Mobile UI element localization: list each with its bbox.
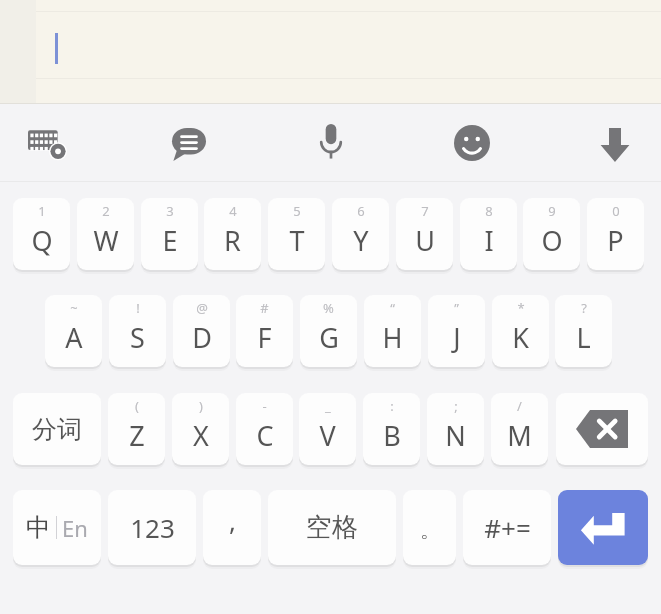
staticText: D bbox=[192, 319, 212, 356]
staticText: I bbox=[484, 222, 494, 259]
staticText: O bbox=[541, 222, 563, 259]
staticText: En bbox=[62, 513, 88, 543]
staticText: P bbox=[607, 222, 624, 259]
staticText: 123 bbox=[130, 510, 175, 545]
staticText: 9 bbox=[548, 202, 556, 220]
button[interactable]: * bbox=[492, 295, 549, 367]
button[interactable]: 。 bbox=[403, 490, 456, 565]
staticText: / bbox=[517, 397, 522, 415]
button[interactable]: - bbox=[236, 393, 293, 465]
staticText: M bbox=[507, 417, 532, 454]
staticText: 6 bbox=[357, 202, 365, 220]
button[interactable]: 8 bbox=[460, 198, 517, 270]
button[interactable]: ) bbox=[172, 393, 229, 465]
staticText: U bbox=[415, 222, 435, 259]
staticText: ; bbox=[454, 397, 458, 415]
staticText: 空格 bbox=[306, 511, 358, 544]
staticText: C bbox=[256, 417, 274, 454]
button[interactable]: Keyboard settings bbox=[18, 117, 76, 169]
staticText: W bbox=[93, 222, 119, 259]
button[interactable]: ~ bbox=[45, 295, 102, 367]
button[interactable]: Voice input bbox=[302, 116, 360, 168]
staticText: L bbox=[576, 319, 591, 356]
staticText: , bbox=[229, 503, 236, 538]
button[interactable]: Backspace bbox=[556, 393, 648, 465]
button[interactable]: % bbox=[300, 295, 357, 367]
button[interactable]: # bbox=[236, 295, 293, 367]
button[interactable]: Hide keyboard bbox=[586, 119, 644, 171]
staticText: S bbox=[130, 319, 145, 356]
staticText: Z bbox=[129, 417, 145, 454]
button[interactable]: “ bbox=[364, 295, 421, 367]
button[interactable]: 4 bbox=[204, 198, 261, 270]
staticText: # bbox=[260, 299, 269, 317]
staticText: 0 bbox=[612, 202, 620, 220]
staticText: @ bbox=[196, 299, 208, 317]
button[interactable]: 9 bbox=[523, 198, 580, 270]
staticText: : bbox=[390, 397, 394, 415]
staticText: “ bbox=[390, 299, 395, 317]
staticText: 1 bbox=[38, 202, 46, 220]
staticText: E bbox=[162, 222, 178, 259]
staticText: 7 bbox=[421, 202, 429, 220]
staticText: ! bbox=[136, 299, 140, 317]
staticText: ~ bbox=[70, 299, 78, 317]
staticText: J bbox=[453, 319, 461, 356]
button[interactable]: 空格 bbox=[268, 490, 396, 565]
staticText: B bbox=[383, 417, 401, 454]
button[interactable]: 2 bbox=[77, 198, 134, 270]
staticText: 8 bbox=[485, 202, 493, 220]
button[interactable]: : bbox=[363, 393, 420, 465]
staticText: % bbox=[323, 299, 334, 317]
button[interactable]: 3 bbox=[141, 198, 198, 270]
staticText: Y bbox=[353, 222, 369, 259]
button[interactable]: _ bbox=[299, 393, 356, 465]
button[interactable]: 分词 bbox=[13, 393, 101, 465]
button[interactable]: Emoji bbox=[443, 117, 501, 169]
staticText: N bbox=[445, 417, 466, 454]
button[interactable]: ! bbox=[109, 295, 166, 367]
staticText: 2 bbox=[102, 202, 110, 220]
button[interactable]: ( bbox=[108, 393, 165, 465]
staticText: G bbox=[319, 319, 339, 356]
staticText: 中 bbox=[26, 512, 51, 543]
button[interactable]: ” bbox=[428, 295, 485, 367]
staticText: _ bbox=[325, 397, 331, 415]
staticText: R bbox=[224, 222, 241, 259]
button[interactable]: Switch input language bbox=[13, 490, 101, 565]
button[interactable]: 6 bbox=[332, 198, 389, 270]
button[interactable]: 0 bbox=[587, 198, 644, 270]
staticText: Q bbox=[31, 222, 53, 259]
staticText: F bbox=[257, 319, 272, 356]
staticText: V bbox=[319, 417, 336, 454]
staticText: 4 bbox=[229, 202, 237, 220]
staticText: T bbox=[289, 222, 305, 259]
button[interactable]: / bbox=[491, 393, 548, 465]
button[interactable]: ; bbox=[427, 393, 484, 465]
staticText: ( bbox=[135, 397, 139, 415]
staticText: #+= bbox=[484, 510, 531, 545]
button[interactable]: Enter bbox=[558, 490, 648, 565]
staticText: X bbox=[193, 417, 209, 454]
staticText: 3 bbox=[166, 202, 174, 220]
button[interactable]: #+= bbox=[463, 490, 551, 565]
staticText: K bbox=[512, 319, 529, 356]
staticText: - bbox=[262, 397, 267, 415]
staticText: H bbox=[382, 319, 403, 356]
button[interactable]: 1 bbox=[13, 198, 70, 270]
button[interactable]: Messages bbox=[160, 118, 218, 170]
button[interactable]: @ bbox=[173, 295, 230, 367]
button[interactable]: , bbox=[203, 490, 261, 565]
staticText: 5 bbox=[293, 202, 301, 220]
staticText: 分词 bbox=[32, 414, 82, 445]
staticText: * bbox=[517, 299, 525, 317]
staticText: A bbox=[65, 319, 83, 356]
button[interactable]: 5 bbox=[268, 198, 325, 270]
staticText: ? bbox=[581, 299, 587, 317]
button[interactable]: ? bbox=[555, 295, 612, 367]
button[interactable]: 7 bbox=[396, 198, 453, 270]
staticText: ” bbox=[454, 299, 459, 317]
staticText: ) bbox=[199, 397, 203, 415]
button[interactable]: 123 bbox=[108, 490, 196, 565]
staticText: 。 bbox=[420, 518, 440, 543]
